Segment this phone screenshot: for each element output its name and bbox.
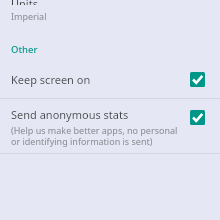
staticText: (Help us make better apps, no personal o… bbox=[11, 124, 181, 147]
staticText: Other bbox=[11, 43, 38, 56]
button[interactable]: Keep screen on bbox=[0, 66, 220, 92]
staticText: Imperial bbox=[11, 10, 47, 22]
staticText: Keep screen on bbox=[11, 72, 184, 87]
button[interactable]: Keep screen on bbox=[184, 66, 210, 92]
staticText: Send anonymous stats bbox=[11, 107, 129, 122]
button[interactable]: Send anonymous stats bbox=[184, 104, 210, 130]
button[interactable]: Send anonymous stats bbox=[0, 104, 220, 150]
button[interactable]: Units bbox=[0, 0, 220, 22]
staticText: Units bbox=[11, 0, 38, 5]
